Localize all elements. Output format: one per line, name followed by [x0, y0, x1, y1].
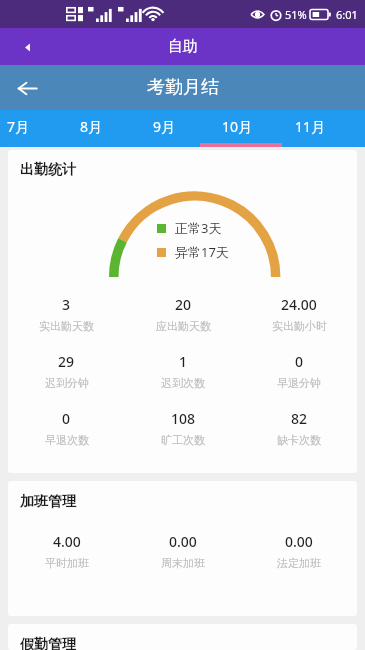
staticText: 0 [295, 352, 304, 371]
staticText: 周末加班 [161, 556, 205, 570]
button[interactable]: 9月 [128, 110, 201, 147]
staticText: 正常3天 [175, 219, 222, 237]
staticText: 出勤统计 [20, 161, 76, 179]
staticText: 24.00 [281, 295, 317, 314]
staticText: 应出勤天数 [156, 319, 211, 333]
staticText: 82 [291, 409, 308, 428]
staticText: 实出勤小时 [272, 319, 327, 333]
staticText: 自助 [168, 37, 198, 56]
staticText: 11月 [295, 117, 326, 136]
staticText: 假勤管理 [20, 636, 76, 650]
staticText: 法定加班 [277, 556, 321, 570]
staticText: 9月 [153, 117, 176, 136]
staticText: 4.00 [53, 532, 81, 551]
staticText: 8月 [80, 117, 103, 136]
staticText: 迟到次数 [161, 376, 205, 390]
button[interactable]: 11月 [274, 110, 347, 147]
button[interactable]: 7月 [0, 110, 55, 147]
staticText: 平时加班 [45, 556, 89, 570]
staticText: 0 [62, 409, 71, 428]
staticText: 1 [179, 352, 188, 371]
button[interactable]: Back [14, 34, 40, 60]
staticText: 实出勤天数 [39, 319, 94, 333]
staticText: 3 [62, 295, 71, 314]
button[interactable]: 8月 [55, 110, 128, 147]
staticText: 早退分钟 [277, 376, 321, 390]
staticText: 6:01 [336, 7, 358, 22]
staticText: 早退次数 [45, 433, 89, 447]
staticText: 10月 [222, 117, 253, 136]
staticText: 缺卡次数 [277, 433, 321, 447]
staticText: 29 [58, 352, 75, 371]
staticText: 108 [171, 409, 196, 428]
staticText: 异常17天 [175, 243, 229, 261]
staticText: 0.00 [169, 532, 197, 551]
staticText: 考勤月结 [147, 76, 219, 99]
staticText: 旷工次数 [161, 433, 205, 447]
button[interactable]: 10月 [201, 110, 274, 147]
staticText: 0.00 [285, 532, 313, 551]
staticText: 7月 [7, 117, 30, 136]
staticText: 20 [175, 295, 192, 314]
staticText: 51% [285, 7, 307, 22]
staticText: 迟到分钟 [45, 376, 89, 390]
staticText: 加班管理 [20, 493, 76, 511]
button[interactable]: Back [10, 71, 44, 105]
